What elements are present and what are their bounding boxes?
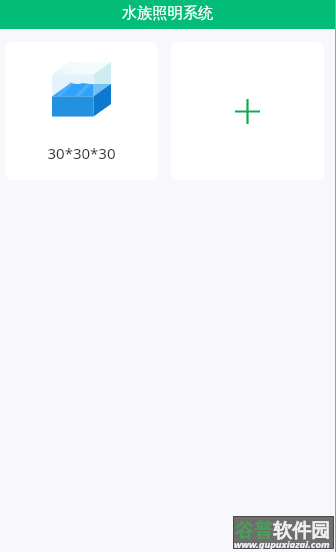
- staticText: 30*30*30: [47, 143, 116, 163]
- staticText: www.gupuxiazai.com: [234, 538, 330, 551]
- staticText: 水族照明系统: [122, 3, 214, 22]
- staticText: 谷普: [235, 519, 273, 543]
- staticText: 软件园: [273, 519, 330, 543]
- button[interactable]: 30*30*30: [5, 42, 158, 180]
- button[interactable]: Add aquarium: [171, 42, 324, 180]
